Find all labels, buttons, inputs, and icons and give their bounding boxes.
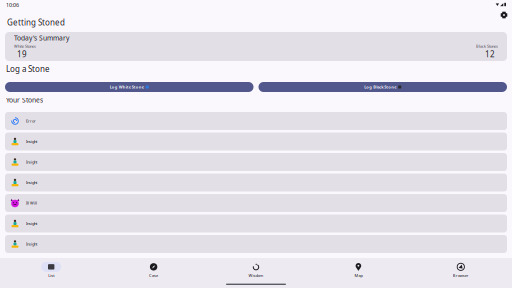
- staticText: 10:06: [6, 1, 19, 9]
- staticText: Ill Will: [26, 200, 37, 206]
- button[interactable]: Map: [307, 258, 410, 288]
- button[interactable]: Ill Will: [5, 194, 507, 212]
- staticText: Log White Stone: [110, 84, 144, 90]
- staticText: Wisdom: [248, 273, 263, 278]
- button[interactable]: Log White Stone: [5, 82, 253, 92]
- staticText: Insight: [26, 241, 37, 247]
- staticText: Case: [149, 273, 158, 278]
- button[interactable]: List: [0, 258, 102, 288]
- staticText: Insight: [26, 139, 37, 144]
- staticText: Map: [354, 273, 362, 278]
- button[interactable]: Browser: [410, 258, 512, 288]
- staticText: Log Black Stone: [364, 84, 396, 90]
- staticText: Error: [26, 118, 36, 124]
- staticText: 19: [17, 49, 27, 59]
- staticText: Browser: [453, 273, 469, 278]
- staticText: Today's Summary: [14, 34, 69, 42]
- button[interactable]: Insight: [5, 173, 507, 191]
- button[interactable]: Settings: [497, 14, 511, 28]
- staticText: White Stones: [14, 43, 36, 49]
- button[interactable]: Insight: [5, 214, 507, 232]
- staticText: Insight: [26, 221, 37, 226]
- button[interactable]: Case: [102, 258, 205, 288]
- button[interactable]: Wisdom: [205, 258, 307, 288]
- button[interactable]: Insight: [5, 132, 507, 150]
- button[interactable]: Insight: [5, 153, 507, 171]
- staticText: Black Stones: [476, 43, 498, 49]
- button[interactable]: Insight: [5, 235, 507, 253]
- staticText: List: [48, 273, 54, 278]
- staticText: 12: [485, 49, 495, 59]
- staticText: Your Stones: [6, 96, 43, 104]
- button[interactable]: Log Black Stone: [258, 82, 507, 92]
- button[interactable]: Error: [5, 112, 507, 130]
- staticText: Insight: [26, 159, 37, 165]
- staticText: Log a Stone: [6, 64, 50, 74]
- staticText: Getting Stoned: [7, 17, 65, 28]
- staticText: Insight: [26, 180, 37, 185]
